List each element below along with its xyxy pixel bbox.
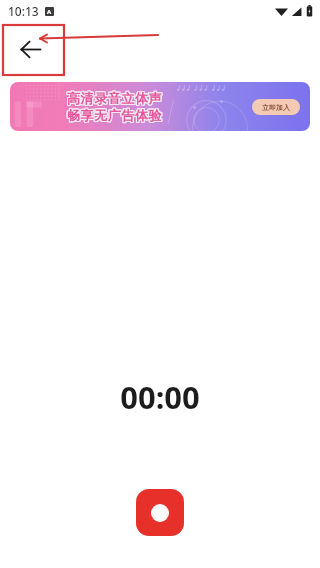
staticText: 畅享无广告体验 xyxy=(67,108,163,124)
staticText: 畅享无广告体验 xyxy=(68,107,164,123)
button[interactable]: 高清录音立体声 xyxy=(10,82,310,131)
staticText: 畅享无广告体验 xyxy=(67,106,163,122)
staticText: 高清录音立体声 xyxy=(67,90,163,106)
button[interactable]: Record xyxy=(136,489,184,536)
staticText: 高清录音立体声 xyxy=(66,89,162,105)
staticText: 立即加入 xyxy=(262,103,290,112)
staticText: 高清录音立体声 xyxy=(68,91,164,107)
staticText: 00:00 xyxy=(120,376,200,418)
staticText: 高清录音立体声 xyxy=(66,90,162,106)
staticText: 高清录音立体声 xyxy=(67,91,163,107)
staticText: 高清录音立体声 xyxy=(67,89,163,105)
staticText: 畅享无广告体验 xyxy=(68,108,164,124)
staticText: 高清录音立体声 xyxy=(68,90,164,106)
staticText: 高清录音立体声 xyxy=(68,89,164,105)
button[interactable]: 立即加入 xyxy=(252,99,300,115)
staticText: 畅享无广告体验 xyxy=(66,108,162,124)
staticText: 畅享无广告体验 xyxy=(66,106,162,122)
staticText: 畅享无广告体验 xyxy=(66,107,162,123)
staticText: 高清录音立体声 xyxy=(66,91,162,107)
staticText: 畅享无广告体验 xyxy=(67,107,163,123)
button[interactable]: Back xyxy=(14,33,46,65)
staticText: A xyxy=(47,8,52,16)
staticText: 畅享无广告体验 xyxy=(68,106,164,122)
staticText: 10:13 xyxy=(8,3,39,19)
